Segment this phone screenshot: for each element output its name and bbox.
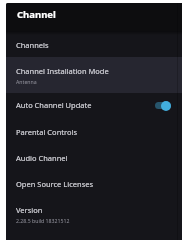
button[interactable]: Auto Channel Update toggle bbox=[154, 100, 171, 111]
staticText: Channel Installation Mode bbox=[16, 66, 109, 76]
button[interactable]: Channels bbox=[6, 35, 182, 57]
button[interactable]: Channel Installation Mode bbox=[6, 57, 182, 93]
button[interactable]: Open Source Licenses bbox=[6, 173, 182, 199]
button[interactable]: Auto Channel Update bbox=[6, 93, 182, 120]
button[interactable]: Audio Channel bbox=[6, 147, 182, 173]
staticText: Audio Channel bbox=[16, 153, 68, 163]
staticText: Version bbox=[16, 205, 43, 215]
staticText: Channel bbox=[17, 8, 56, 21]
button[interactable]: Version bbox=[6, 199, 182, 234]
button[interactable]: Parental Controls bbox=[6, 120, 182, 147]
staticText: Parental Controls bbox=[16, 127, 77, 137]
staticText: Antenna bbox=[16, 78, 37, 85]
staticText: Auto Channel Update bbox=[16, 100, 92, 110]
staticText: Open Source Licenses bbox=[16, 179, 94, 189]
staticText: Channels bbox=[16, 40, 49, 50]
staticText: 2.28.5 build 18321512 bbox=[16, 217, 70, 224]
